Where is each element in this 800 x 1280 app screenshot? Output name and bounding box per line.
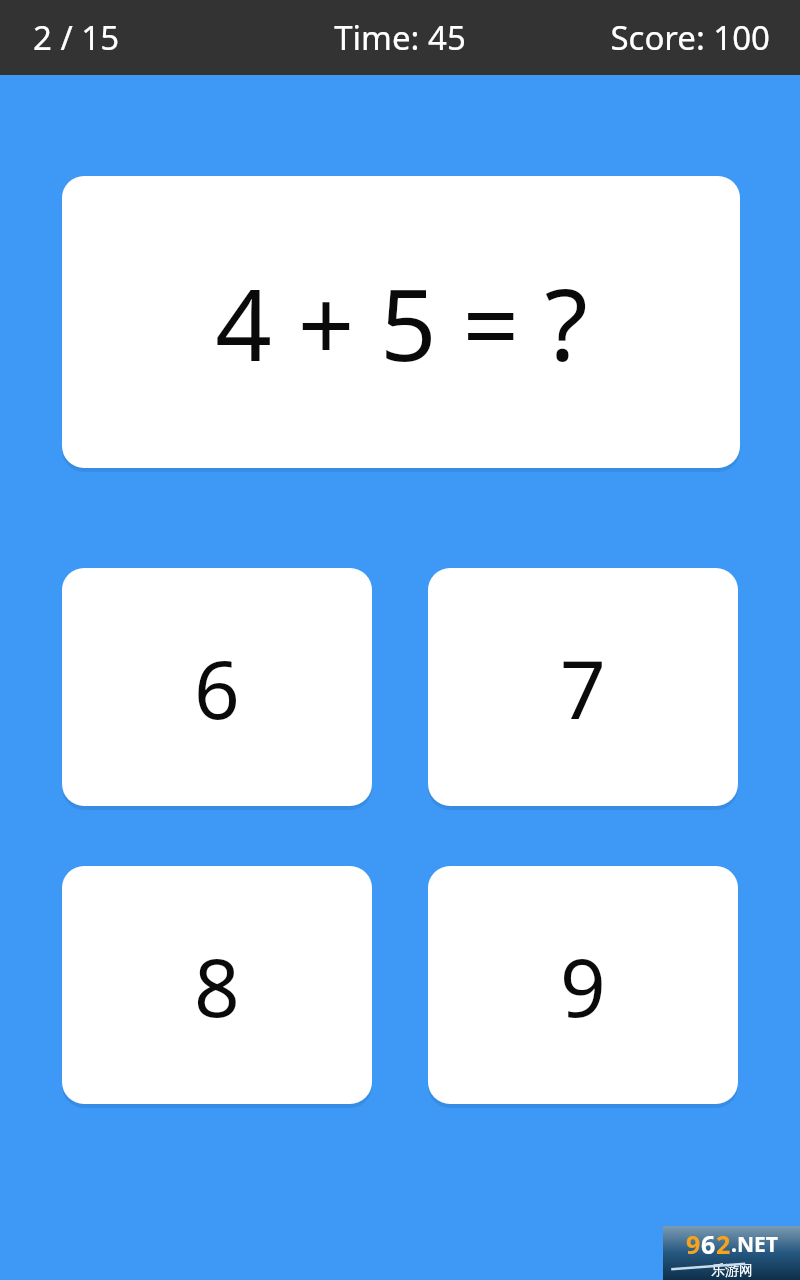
staticText: 6	[701, 1227, 716, 1261]
staticText: 2 / 15	[33, 15, 120, 60]
other: 962.NET watermark	[663, 1226, 800, 1280]
staticText: 9	[686, 1227, 701, 1261]
button[interactable]: 8	[62, 866, 372, 1104]
button[interactable]: 7	[428, 568, 738, 806]
staticText: 4 + 5 = ?	[215, 255, 588, 390]
button[interactable]: 4 + 5 = ?	[62, 176, 740, 468]
staticText: 8	[194, 931, 240, 1040]
staticText: Time: 45	[334, 15, 466, 60]
staticText: 7	[560, 633, 606, 742]
button[interactable]: 6	[62, 568, 372, 806]
button[interactable]: 9	[428, 866, 738, 1104]
staticText: Score: 100	[610, 15, 770, 60]
staticText: 9	[560, 931, 606, 1040]
staticText: .NET	[731, 1230, 778, 1259]
staticText: 2	[716, 1227, 731, 1261]
staticText: 乐游网	[711, 1262, 753, 1280]
staticText: 6	[194, 633, 240, 742]
